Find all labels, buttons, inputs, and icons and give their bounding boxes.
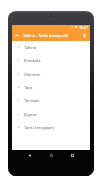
- button[interactable]: Back: [14, 31, 20, 39]
- staticText: Jõgeva: [24, 112, 37, 117]
- staticText: Tartu rongijaam: [24, 125, 54, 130]
- staticText: Taps: [24, 85, 33, 90]
- staticText: Tamsalu: [24, 98, 40, 103]
- staticText: Ülemiste: [24, 72, 41, 77]
- staticText: 16:41: [79, 25, 89, 29]
- staticText: Tallinn: [24, 45, 37, 50]
- staticText: Kiisaküla: [24, 58, 41, 63]
- button[interactable]: Location: [80, 31, 88, 40]
- button[interactable]: Ülemiste: [12, 68, 90, 81]
- button[interactable]: Recents: [68, 151, 77, 160]
- button[interactable]: Taps: [12, 81, 90, 94]
- staticText: Tallinn - Tartu (otsepeat): [23, 33, 68, 38]
- button[interactable]: Home: [47, 151, 56, 160]
- button[interactable]: Tamsalu: [12, 94, 90, 107]
- button[interactable]: Tartu rongijaam: [12, 121, 90, 134]
- button[interactable]: Back: [25, 151, 34, 160]
- button[interactable]: Tallinn: [12, 41, 90, 54]
- button[interactable]: Kiisaküla: [12, 54, 90, 67]
- button[interactable]: Jõgeva: [12, 108, 90, 121]
